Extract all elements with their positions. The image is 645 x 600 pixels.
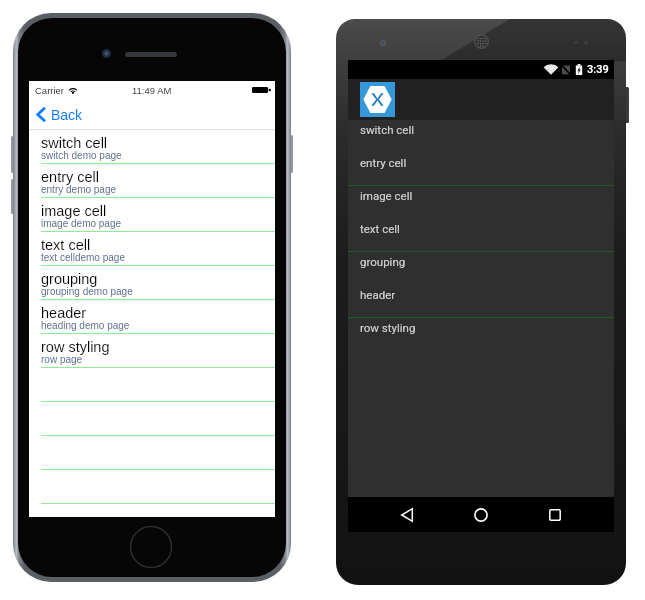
staticText: switch cell (360, 123, 415, 136)
staticText: row page (41, 354, 83, 365)
staticText: grouping demo page (41, 286, 133, 297)
button[interactable]: grouping (348, 252, 614, 285)
button[interactable]: grouping (29, 266, 275, 300)
button[interactable]: image cell (29, 198, 275, 232)
button[interactable]: header (29, 300, 275, 334)
button[interactable]: header (348, 285, 614, 318)
staticText: switch cell (41, 135, 108, 151)
staticText: Carrier (35, 85, 65, 96)
staticText: entry demo page (41, 184, 117, 195)
button[interactable]: entry cell (29, 164, 275, 198)
button[interactable]: text cell (29, 232, 275, 266)
staticText: entry cell (360, 156, 407, 169)
staticText: 3:39 (587, 63, 609, 76)
staticText: entry cell (41, 169, 100, 185)
staticText: header (360, 288, 396, 301)
staticText: image cell (360, 189, 413, 202)
button[interactable]: Recent apps (537, 497, 573, 532)
button[interactable]: image cell (348, 186, 614, 219)
button[interactable]: Back (29, 106, 91, 123)
button[interactable]: Xamarin logo (360, 82, 395, 117)
staticText: text celldemo page (41, 252, 125, 263)
button[interactable]: switch cell (29, 130, 275, 164)
staticText: 11:49 AM (132, 85, 172, 96)
button[interactable]: entry cell (348, 153, 614, 186)
button[interactable]: row styling (29, 334, 275, 368)
button[interactable]: switch cell (348, 120, 614, 153)
button[interactable]: Back (389, 497, 425, 532)
button[interactable]: Home (463, 497, 499, 532)
staticText: text cell (360, 222, 400, 235)
staticText: image cell (41, 203, 107, 219)
staticText: heading demo page (41, 320, 130, 331)
staticText: Back (51, 107, 83, 123)
staticText: row styling (360, 321, 416, 334)
staticText: switch demo page (41, 150, 122, 161)
staticText: header (41, 305, 87, 321)
staticText: text cell (41, 237, 91, 253)
button[interactable]: text cell (348, 219, 614, 252)
staticText: row styling (41, 339, 110, 355)
staticText: grouping (41, 271, 98, 287)
staticText: grouping (360, 255, 406, 268)
staticText: image demo page (41, 218, 122, 229)
button[interactable]: row styling (348, 318, 614, 351)
